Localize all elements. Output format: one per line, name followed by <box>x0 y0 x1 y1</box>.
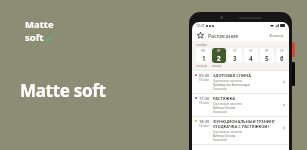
staticText: 5 <box>265 54 269 62</box>
staticText: 2 <box>217 54 221 62</box>
staticText: СР <box>233 49 237 53</box>
staticText: сегодня <box>196 64 212 68</box>
staticText: Matte soft <box>20 79 106 102</box>
button[interactable]: 09:00 <box>192 71 289 93</box>
staticText: 55 мин <box>199 101 210 105</box>
staticText: Фильтр <box>269 33 284 38</box>
staticText: Виктор Оксана <box>213 134 236 138</box>
staticText: 6 <box>280 54 284 62</box>
button[interactable]: СБ <box>276 48 287 63</box>
staticText: Групповые занятия <box>213 79 243 83</box>
staticText: 18:30 <box>199 119 210 124</box>
staticText: Большой <box>213 87 227 91</box>
staticText: Расписание <box>208 32 239 39</box>
staticText: ПН <box>201 49 206 53</box>
staticText: ВТ <box>217 49 221 53</box>
staticText: 17:30 <box>199 96 210 101</box>
staticText: Большой <box>213 138 227 142</box>
staticText: ЗДОРОВАЯ СПИНА <box>213 73 252 78</box>
staticText: Групповые занятия <box>213 130 243 134</box>
staticText: Виктор Оксана <box>213 106 236 110</box>
staticText: Большой <box>213 110 227 114</box>
button[interactable]: СР <box>228 48 242 63</box>
staticText: 09:00 <box>199 73 210 78</box>
button[interactable]: ВТ <box>212 48 226 63</box>
staticText: 4 <box>249 54 253 62</box>
staticText: СБ <box>280 49 284 53</box>
staticText: завтра <box>212 64 222 68</box>
staticText: РАСТЯЖКА <box>213 96 236 101</box>
staticText: ноябрь <box>196 43 208 47</box>
staticText: soft <box>25 31 44 44</box>
button[interactable]: 18:30 <box>192 117 289 144</box>
button[interactable]: Фильтр <box>268 31 285 40</box>
button[interactable]: ПН <box>196 48 210 63</box>
staticText: Групповые занятия <box>213 102 243 106</box>
staticText: 55 мин <box>199 78 210 82</box>
staticText: Matte <box>25 18 54 31</box>
staticText: Криворучко Александра <box>213 83 250 87</box>
button[interactable]: 17:30 <box>192 94 289 116</box>
button[interactable]: ПТ <box>260 48 274 63</box>
staticText: ЧТ <box>249 49 253 53</box>
staticText: 1 <box>202 54 206 62</box>
staticText: 55 мин <box>199 124 210 128</box>
staticText: ФУНКЦИОНАЛЬНЫЙ ТРЕНИНГ (ПОДКАЧКА С РАСТЯ… <box>213 119 276 129</box>
button[interactable]: Избранное <box>196 31 205 40</box>
staticText: 12:21 <box>196 23 205 28</box>
staticText: 3 <box>233 54 237 62</box>
staticText: ПТ <box>265 49 269 53</box>
button[interactable]: ЧТ <box>244 48 258 63</box>
